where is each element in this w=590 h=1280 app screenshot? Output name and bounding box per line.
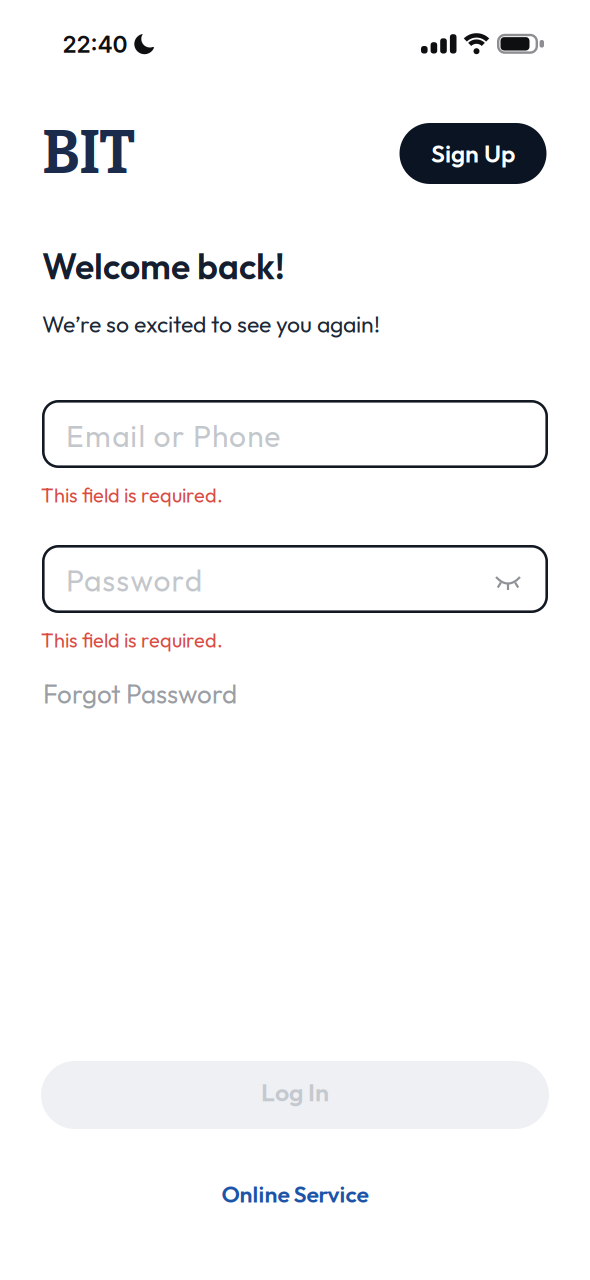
button[interactable]: Log In [41,1061,549,1129]
staticText: Sign Up [431,138,515,169]
staticText: We’re so excited to see you again! [42,309,380,338]
staticText: Password [66,562,202,599]
button[interactable]: Online Service [221,1179,368,1208]
button[interactable]: Email or Phone [42,400,548,468]
button[interactable]: Sign Up [399,123,546,184]
staticText: BIT [42,117,135,189]
staticText: Welcome back! [42,244,285,288]
staticText: 22:40 [62,31,127,58]
staticText: Email or Phone [66,417,280,455]
staticText: This field is required. [41,627,223,653]
staticText: Log In [261,1076,329,1108]
staticText: This field is required. [41,482,223,508]
button[interactable]: Forgot Password [43,678,237,710]
button[interactable]: Password [42,545,548,613]
button[interactable]: Show password [0,0,590,1280]
staticText: Forgot Password [43,678,237,710]
staticText: Online Service [221,1179,368,1208]
